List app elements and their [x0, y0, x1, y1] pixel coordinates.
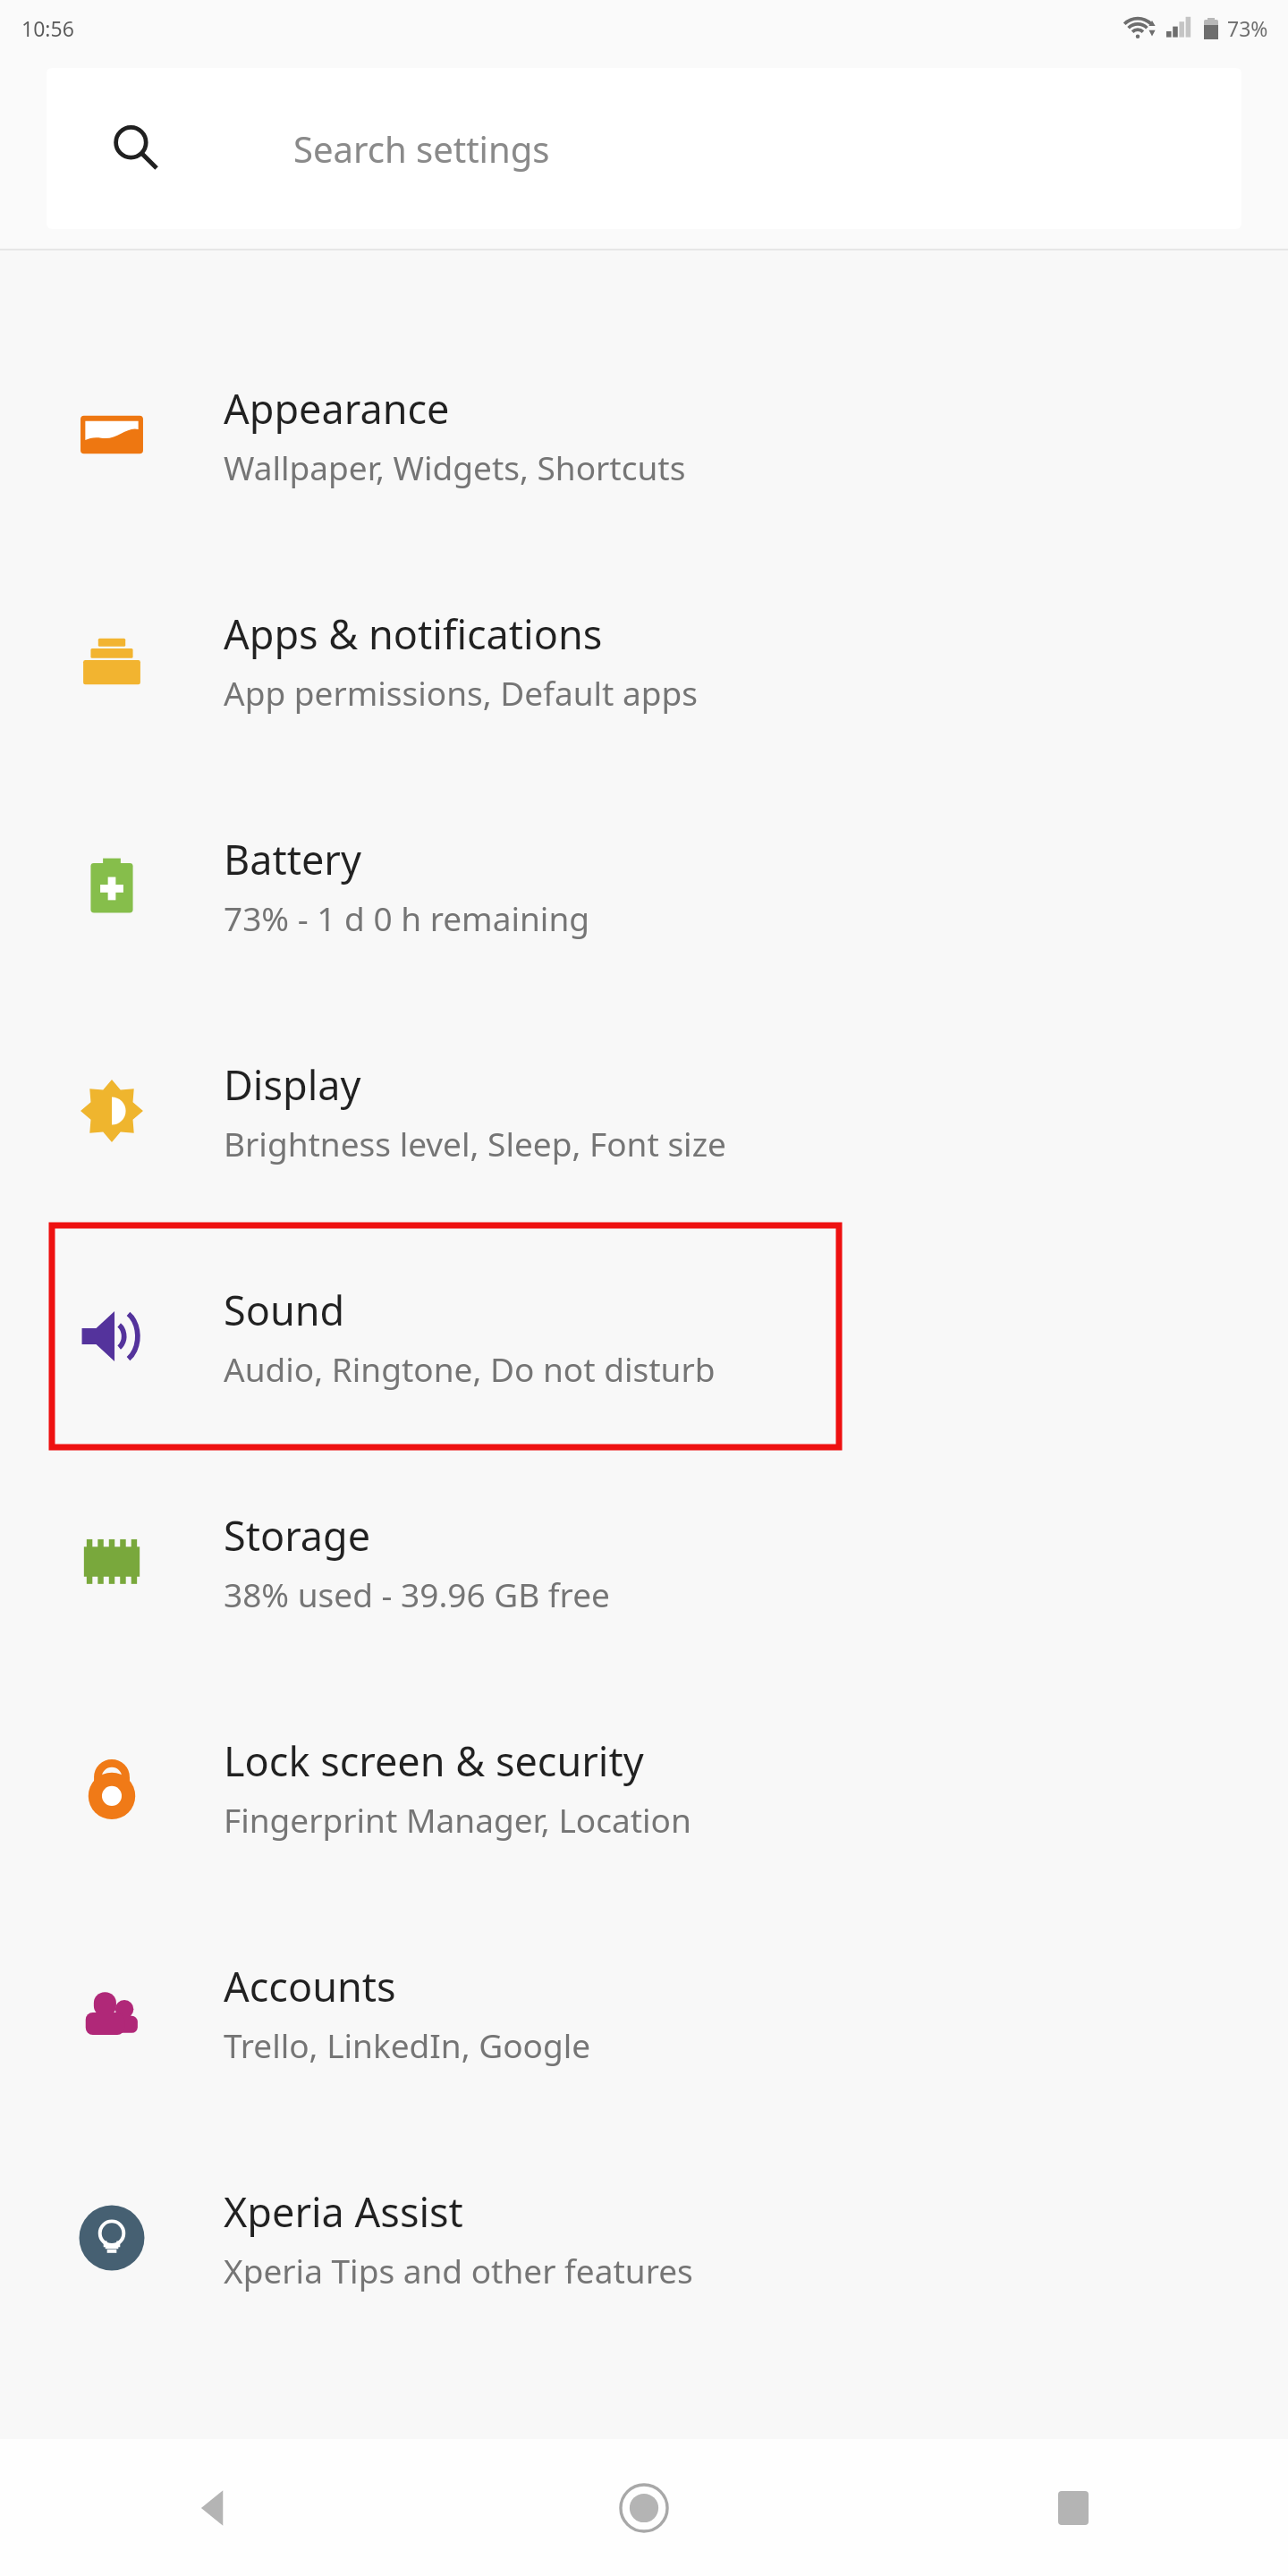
staticText: Audio, Ringtone, Do not disturb: [224, 1346, 716, 1391]
staticText: 73%: [1227, 14, 1268, 42]
staticText: Apps & notifications: [224, 606, 603, 661]
staticText: Xperia Tips and other features: [224, 2248, 693, 2292]
button[interactable]: Sound: [0, 1224, 1288, 1449]
button[interactable]: Xperia Assist: [0, 2125, 1288, 2351]
staticText: Display: [224, 1057, 361, 1112]
button[interactable]: Display: [0, 998, 1288, 1224]
staticText: Storage: [224, 1508, 371, 1563]
button[interactable]: Apps & notifications: [0, 547, 1288, 773]
staticText: App permissions, Default apps: [224, 670, 699, 715]
staticText: Accounts: [224, 1959, 396, 2013]
button[interactable]: Storage: [0, 1449, 1288, 1674]
staticText: Search settings: [293, 124, 550, 173]
staticText: Wallpaper, Widgets, Shortcuts: [224, 445, 686, 489]
staticText: Fingerprint Manager, Location: [224, 1797, 691, 1842]
staticText: 10:56: [21, 14, 74, 42]
staticText: Xperia Assist: [224, 2184, 463, 2239]
button[interactable]: Back: [0, 2439, 429, 2576]
staticText: Battery: [224, 832, 361, 886]
staticText: 38% used - 39.96 GB free: [224, 1572, 610, 1616]
button[interactable]: Accounts: [0, 1900, 1288, 2125]
staticText: 73% - 1 d 0 h remaining: [224, 895, 589, 940]
staticText: Brightness level, Sleep, Font size: [224, 1121, 726, 1165]
button[interactable]: Battery: [0, 773, 1288, 998]
button[interactable]: Appearance: [0, 322, 1288, 547]
staticText: Trello, LinkedIn, Google: [224, 2022, 591, 2067]
button[interactable]: Recent apps: [859, 2439, 1288, 2576]
button[interactable]: Lock screen & security: [0, 1674, 1288, 1900]
staticText: Appearance: [224, 381, 450, 436]
staticText: Sound: [224, 1283, 345, 1337]
staticText: Lock screen & security: [224, 1733, 644, 1788]
button[interactable]: Search settings: [47, 68, 1241, 229]
button[interactable]: Home: [429, 2439, 859, 2576]
